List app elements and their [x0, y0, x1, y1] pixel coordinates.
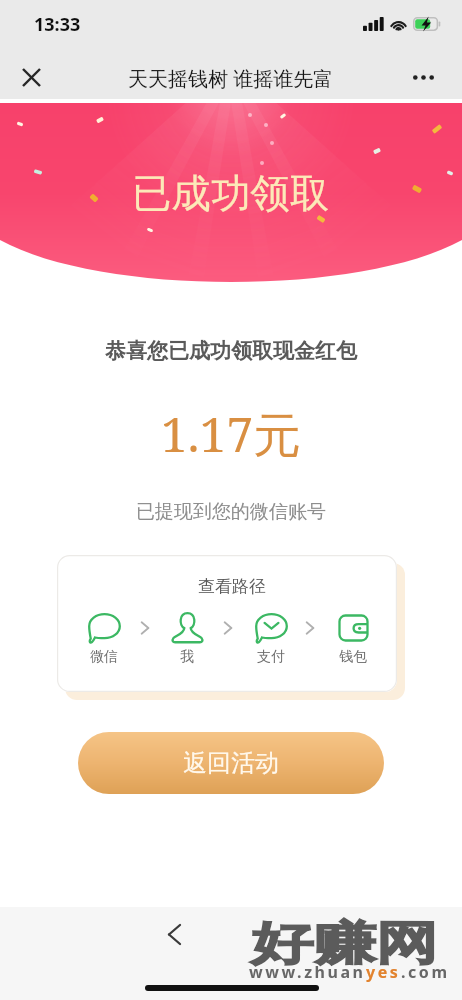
staticText: 天天摇钱树 谁摇谁先富 [128, 65, 334, 92]
button[interactable]: Back [152, 912, 197, 957]
button[interactable]: 钱包 [331, 611, 375, 666]
staticText: 我 [180, 648, 194, 666]
button[interactable]: More options [401, 55, 446, 100]
staticText: 查看路径 [198, 576, 266, 597]
staticText: 微信 [90, 648, 118, 666]
staticText: 已提现到您的微信账号 [0, 500, 462, 524]
staticText: 1.17元 [0, 401, 462, 467]
staticText: 返回活动 [183, 748, 279, 778]
staticText: yes [366, 961, 401, 983]
staticText: 恭喜您已成功领取现金红包 [0, 338, 462, 364]
button[interactable]: Close [9, 55, 54, 100]
button[interactable]: 我 [165, 611, 209, 666]
staticText: www.zhuan [249, 961, 366, 983]
button[interactable]: 返回活动 [78, 732, 384, 794]
staticText: .com [401, 961, 450, 983]
staticText: 13:33 [34, 12, 81, 37]
button[interactable]: 支付 [249, 611, 293, 666]
staticText: 好赚网 [251, 915, 438, 973]
staticText: 支付 [257, 648, 285, 666]
button[interactable]: 微信 [82, 611, 126, 666]
staticText: 钱包 [339, 648, 367, 666]
staticText: 已成功领取 [132, 169, 330, 219]
